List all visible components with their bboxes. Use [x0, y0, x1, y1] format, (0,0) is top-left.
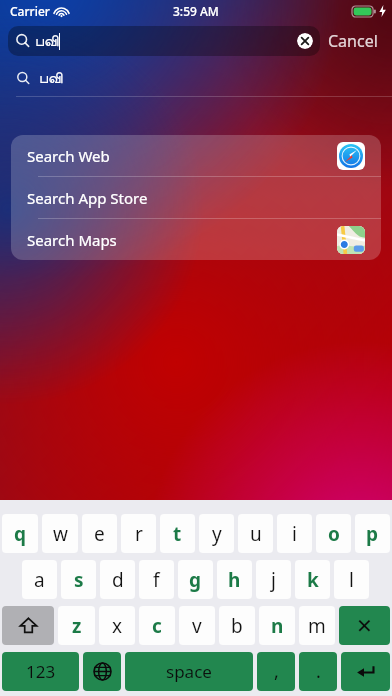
- button[interactable]: 123: [2, 652, 79, 691]
- staticText: space: [166, 660, 212, 683]
- button[interactable]: o: [316, 514, 351, 553]
- staticText: w: [53, 521, 68, 547]
- staticText: ✕: [356, 614, 373, 637]
- staticText: i: [292, 521, 297, 547]
- staticText: m: [308, 613, 326, 639]
- button[interactable]: p: [355, 514, 390, 553]
- button[interactable]: Shift: [2, 606, 54, 645]
- staticText: l: [349, 567, 354, 593]
- button[interactable]: Change keyboard language: [83, 652, 121, 691]
- button[interactable]: m: [299, 606, 335, 645]
- button[interactable]: h: [217, 560, 252, 599]
- staticText: n: [271, 613, 284, 639]
- button[interactable]: a: [22, 560, 57, 599]
- button[interactable]: z: [58, 606, 95, 645]
- staticText: v: [192, 613, 202, 639]
- button[interactable]: n: [259, 606, 295, 645]
- button[interactable]: பவி: [0, 60, 392, 96]
- staticText: x: [112, 613, 123, 639]
- staticText: c: [152, 613, 162, 639]
- button[interactable]: b: [219, 606, 255, 645]
- staticText: Search App Store: [27, 188, 148, 208]
- button[interactable]: Return: [341, 652, 390, 691]
- staticText: d: [112, 567, 124, 593]
- staticText: Cancel: [328, 30, 378, 52]
- button[interactable]: r: [121, 514, 156, 553]
- button[interactable]: Delete: [339, 606, 390, 645]
- staticText: k: [307, 567, 319, 593]
- staticText: b: [231, 613, 243, 639]
- button[interactable]: k: [295, 560, 330, 599]
- button[interactable]: Clear text: [297, 33, 313, 49]
- button[interactable]: j: [256, 560, 291, 599]
- button[interactable]: t: [160, 514, 195, 553]
- button[interactable]: w: [42, 514, 78, 553]
- button[interactable]: y: [199, 514, 234, 553]
- button[interactable]: s: [61, 560, 96, 599]
- staticText: o: [328, 521, 340, 547]
- staticText: பவி: [39, 71, 63, 86]
- button[interactable]: q: [2, 514, 38, 553]
- staticText: h: [228, 567, 241, 593]
- staticText: y: [212, 521, 222, 547]
- button[interactable]: x: [99, 606, 135, 645]
- staticText: .: [316, 659, 321, 684]
- staticText: பவி: [35, 34, 59, 49]
- staticText: r: [135, 521, 143, 547]
- staticText: ,: [274, 659, 279, 684]
- button[interactable]: ,: [257, 652, 295, 691]
- button[interactable]: u: [238, 514, 273, 553]
- staticText: z: [72, 613, 82, 639]
- staticText: p: [366, 521, 379, 547]
- button[interactable]: e: [82, 514, 117, 553]
- button[interactable]: v: [179, 606, 215, 645]
- button[interactable]: பவி: [8, 26, 320, 56]
- staticText: s: [74, 567, 84, 593]
- staticText: 3:59 AM: [173, 3, 219, 19]
- staticText: u: [250, 521, 262, 547]
- staticText: Carrier: [10, 3, 50, 19]
- button[interactable]: Search Maps: [11, 219, 381, 260]
- staticText: g: [189, 567, 202, 593]
- button[interactable]: g: [178, 560, 213, 599]
- button[interactable]: .: [299, 652, 337, 691]
- button[interactable]: f: [139, 560, 174, 599]
- staticText: a: [34, 567, 45, 593]
- staticText: e: [94, 521, 105, 547]
- button[interactable]: c: [139, 606, 175, 645]
- button[interactable]: d: [100, 560, 135, 599]
- button[interactable]: Search Web: [11, 135, 381, 176]
- staticText: j: [271, 567, 276, 593]
- button[interactable]: Cancel: [320, 26, 386, 56]
- staticText: Search Web: [27, 146, 110, 166]
- button[interactable]: Search App Store: [11, 177, 381, 218]
- button[interactable]: l: [334, 560, 369, 599]
- button[interactable]: space: [125, 652, 253, 691]
- staticText: f: [153, 567, 160, 593]
- staticText: q: [14, 521, 27, 547]
- button[interactable]: i: [277, 514, 312, 553]
- staticText: 123: [26, 660, 56, 683]
- staticText: Search Maps: [27, 230, 117, 250]
- staticText: t: [173, 521, 182, 547]
